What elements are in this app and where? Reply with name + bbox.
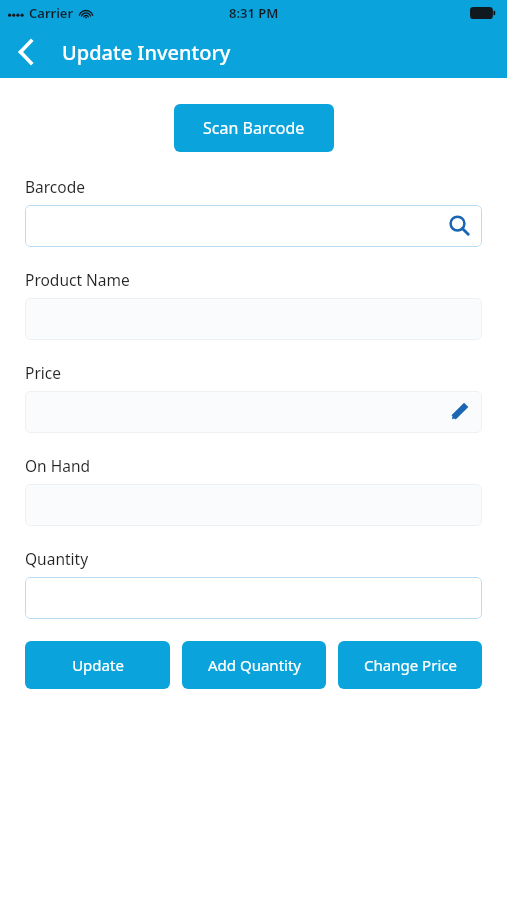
staticText: Quantity bbox=[25, 548, 89, 569]
button[interactable]: Change Price bbox=[338, 641, 482, 689]
staticText: Update Inventory bbox=[62, 39, 231, 66]
staticText: Update bbox=[72, 655, 124, 675]
staticText: Change Price bbox=[364, 655, 457, 675]
staticText: Barcode bbox=[25, 176, 85, 197]
staticText: On Hand bbox=[25, 455, 91, 476]
button[interactable]: Search barcode bbox=[444, 211, 474, 241]
staticText: Product Name bbox=[25, 269, 130, 290]
button[interactable]: Edit price bbox=[444, 397, 474, 427]
staticText: 8:31 PM bbox=[229, 4, 279, 22]
staticText: Price bbox=[25, 362, 61, 383]
staticText: Carrier bbox=[29, 4, 74, 22]
button[interactable]: Add Quantity bbox=[182, 641, 326, 689]
staticText: Add Quantity bbox=[208, 655, 301, 675]
button[interactable]: Back bbox=[6, 32, 46, 72]
button[interactable] bbox=[25, 577, 482, 619]
button[interactable]: Search barcode bbox=[25, 205, 482, 247]
staticText: Scan Barcode bbox=[203, 117, 305, 139]
button[interactable]: Edit price bbox=[25, 391, 482, 433]
button[interactable]: Scan Barcode bbox=[174, 104, 334, 152]
button[interactable]: Update bbox=[25, 641, 170, 689]
